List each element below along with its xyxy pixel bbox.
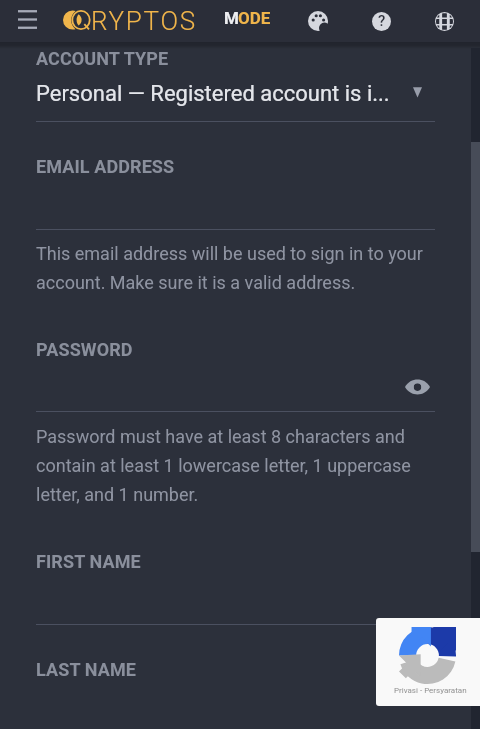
button[interactable]: Theme: [296, 0, 340, 42]
staticText: FIRST NAME: [36, 551, 141, 572]
staticText: Privasi - Persyaratan: [394, 686, 467, 695]
staticText: LAST NAME: [36, 659, 136, 680]
staticText: ACCOUNT TYPE: [36, 48, 169, 69]
staticText: This email address will be used to sign …: [36, 243, 435, 293]
button[interactable]: reCAPTCHA: [376, 618, 480, 706]
staticText: Password must have at least 8 characters…: [36, 426, 435, 505]
staticText: Personal — Registered account is i...: [36, 81, 398, 107]
button[interactable]: Qryptos home: [63, 0, 169, 42]
button[interactable]: Menu: [5, 0, 49, 42]
staticText: PASSWORD: [36, 339, 133, 360]
button[interactable]: Personal — Registered account is i...: [36, 81, 435, 109]
staticText: M: [224, 8, 239, 28]
staticText: RYPTOS: [91, 6, 197, 36]
staticText: ODE: [238, 8, 271, 28]
staticText: EMAIL ADDRESS: [36, 156, 175, 177]
button[interactable]: Language: [422, 0, 466, 42]
button[interactable]: Help: [359, 0, 403, 42]
staticText: ?: [378, 12, 386, 30]
button[interactable]: Show password: [396, 368, 439, 406]
button[interactable]: M: [224, 8, 272, 28]
